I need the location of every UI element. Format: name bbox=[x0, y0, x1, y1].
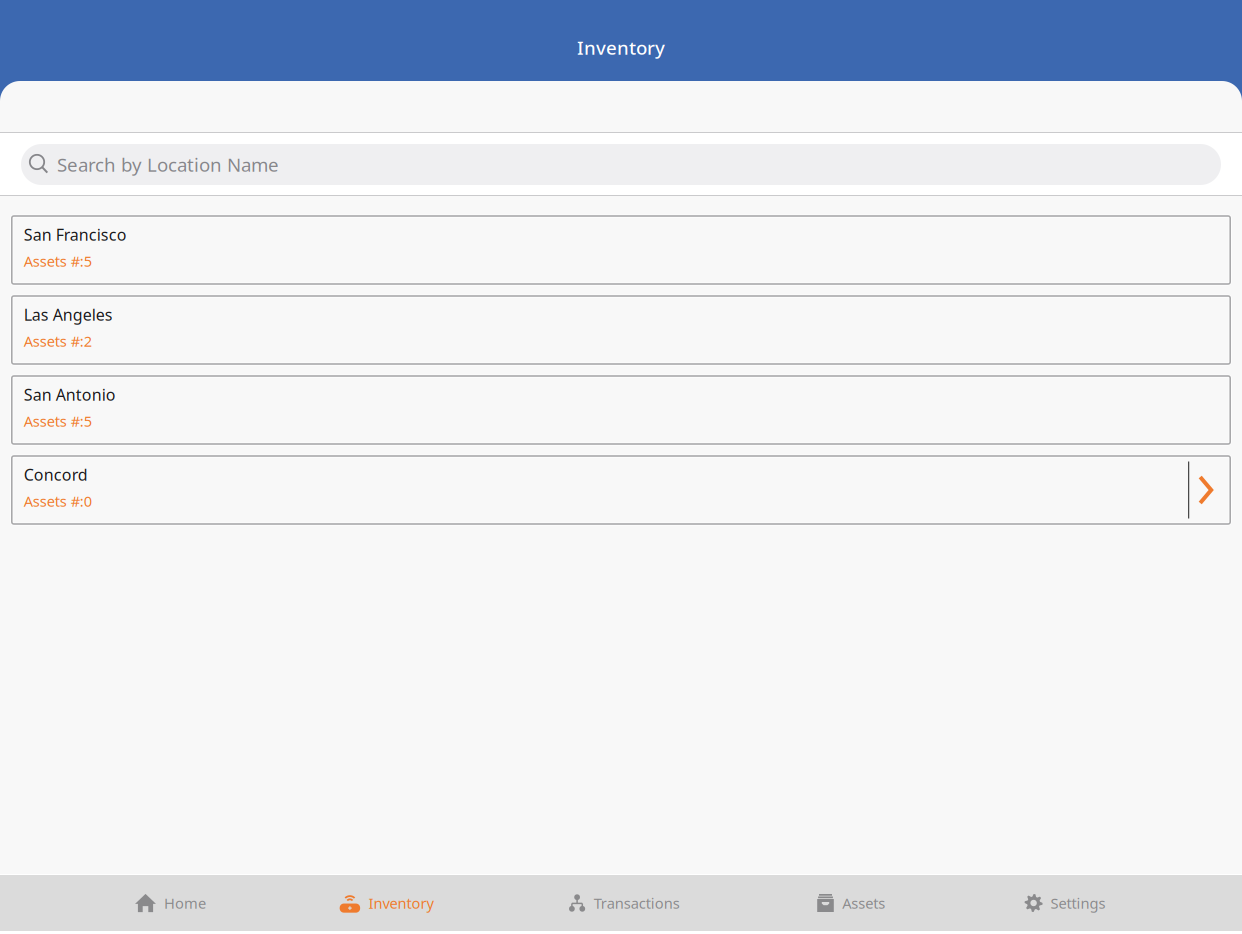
button[interactable]: Home bbox=[0, 874, 248, 931]
staticText: Home bbox=[164, 893, 206, 913]
button[interactable]: Assets bbox=[745, 874, 994, 931]
button[interactable]: San Antonio bbox=[12, 376, 1230, 444]
staticText: Inventory bbox=[368, 893, 433, 913]
button[interactable]: San Francisco bbox=[12, 216, 1230, 284]
button[interactable]: Settings bbox=[994, 874, 1242, 931]
staticText: Assets #:2 bbox=[24, 331, 92, 351]
staticText: San Francisco bbox=[24, 224, 127, 245]
staticText: Concord bbox=[24, 464, 88, 485]
staticText: Transactions bbox=[594, 893, 680, 913]
staticText: Assets bbox=[842, 893, 885, 913]
staticText: Inventory bbox=[577, 35, 665, 60]
staticText: Assets #:0 bbox=[24, 491, 92, 511]
staticText: Assets #:5 bbox=[24, 411, 92, 431]
staticText: Assets #:5 bbox=[24, 251, 92, 271]
button[interactable]: Las Angeles bbox=[12, 296, 1230, 364]
staticText: Settings bbox=[1051, 893, 1106, 913]
staticText: Las Angeles bbox=[24, 304, 113, 325]
button[interactable]: Inventory bbox=[248, 874, 497, 931]
staticText: San Antonio bbox=[24, 384, 116, 405]
staticText: Search by Location Name bbox=[57, 152, 279, 177]
button[interactable]: Transactions bbox=[497, 874, 745, 931]
button[interactable]: Concord bbox=[12, 456, 1230, 524]
